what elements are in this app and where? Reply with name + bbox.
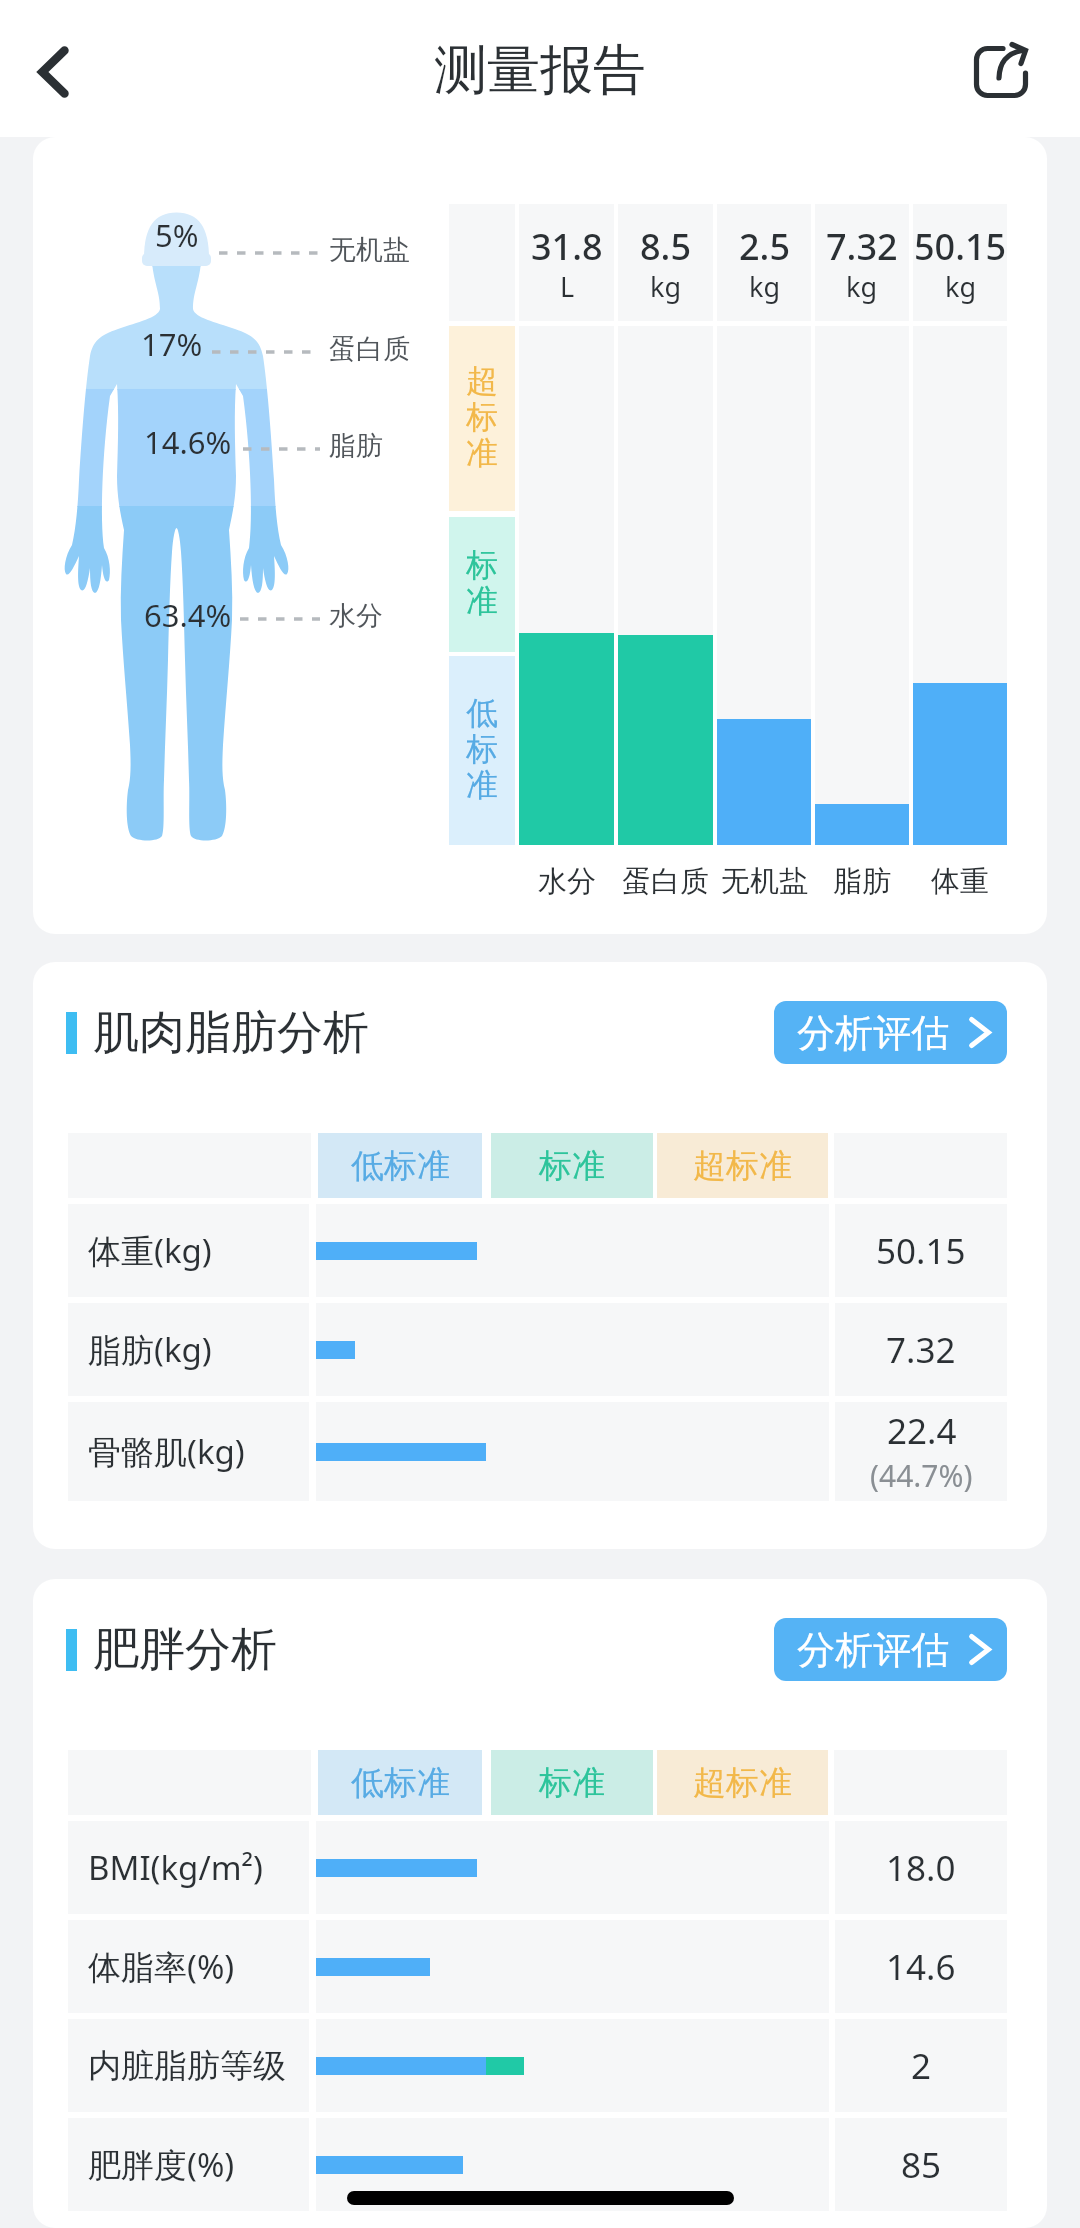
staticText: 50.15 <box>876 1227 966 1275</box>
staticText: 肥胖分析 <box>93 1621 277 1679</box>
staticText: 超 <box>466 365 498 401</box>
staticText: 7.32 <box>886 1326 956 1374</box>
staticText: 蛋白质 <box>329 332 410 366</box>
staticText: 低 <box>466 697 498 733</box>
staticText: 14.6 <box>886 1943 956 1991</box>
staticText: (44.7%) <box>870 1455 973 1496</box>
staticText: 分析评估 <box>797 1009 949 1057</box>
staticText: kg <box>650 268 682 305</box>
staticText: 7.32 <box>826 222 898 271</box>
staticText: 体脂率(%) <box>88 1944 235 1989</box>
staticText: 标 <box>466 733 498 769</box>
button[interactable]: 分析评估 <box>774 1001 1007 1064</box>
button[interactable]: Share <box>948 19 1054 125</box>
staticText: 85 <box>901 2141 942 2189</box>
staticText: 蛋白质 <box>622 863 709 900</box>
staticText: 准 <box>466 437 498 473</box>
staticText: 无机盐 <box>721 863 808 900</box>
staticText: 准 <box>466 769 498 805</box>
staticText: 标 <box>466 401 498 437</box>
staticText: 肥胖度(%) <box>88 2142 235 2187</box>
staticText: 14.6% <box>144 421 232 463</box>
staticText: kg <box>846 268 878 305</box>
staticText: 体重 <box>931 863 989 900</box>
button[interactable]: 分析评估 <box>774 1618 1007 1681</box>
staticText: 脂肪(kg) <box>88 1327 212 1372</box>
staticText: 骨骼肌(kg) <box>88 1429 245 1474</box>
staticText: 无机盐 <box>329 233 410 267</box>
staticText: 标 <box>466 549 498 585</box>
staticText: 体重(kg) <box>88 1228 212 1273</box>
staticText: 63.4% <box>144 594 232 636</box>
staticText: 内脏脂肪等级 <box>88 2045 286 2087</box>
staticText: 2 <box>911 2042 932 2090</box>
staticText: 低标准 <box>351 1762 450 1804</box>
staticText: kg <box>749 268 781 305</box>
staticText: 17% <box>141 323 203 365</box>
staticText: 标准 <box>539 1762 605 1804</box>
staticText: 分析评估 <box>797 1626 949 1674</box>
staticText: 准 <box>466 585 498 621</box>
staticText: 水分 <box>329 599 383 633</box>
staticText: 脂肪 <box>833 863 891 900</box>
staticText: 8.5 <box>640 222 691 271</box>
staticText: 22.4 <box>887 1407 957 1455</box>
staticText: 18.0 <box>886 1844 956 1892</box>
staticText: 测量报告 <box>434 37 646 104</box>
staticText: 超标准 <box>693 1145 792 1187</box>
staticText: 31.8 <box>531 222 603 271</box>
staticText: kg <box>945 268 977 305</box>
staticText: BMI(kg/m²) <box>88 1845 263 1890</box>
button[interactable]: Back <box>0 19 106 125</box>
staticText: 水分 <box>538 863 596 900</box>
staticText: 50.15 <box>914 222 1007 271</box>
staticText: 超标准 <box>693 1762 792 1804</box>
staticText: 2.5 <box>739 222 790 271</box>
staticText: L <box>560 268 575 305</box>
staticText: 5% <box>155 214 199 256</box>
staticText: 脂肪 <box>329 429 383 463</box>
staticText: 标准 <box>539 1145 605 1187</box>
staticText: 肌肉脂肪分析 <box>93 1004 369 1062</box>
staticText: 低标准 <box>351 1145 450 1187</box>
